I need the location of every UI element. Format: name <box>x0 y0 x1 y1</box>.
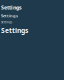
staticText: Settings <box>1 13 18 18</box>
staticText: Settings <box>1 20 12 24</box>
staticText: Settings <box>1 26 28 35</box>
staticText: Settings <box>1 4 22 11</box>
